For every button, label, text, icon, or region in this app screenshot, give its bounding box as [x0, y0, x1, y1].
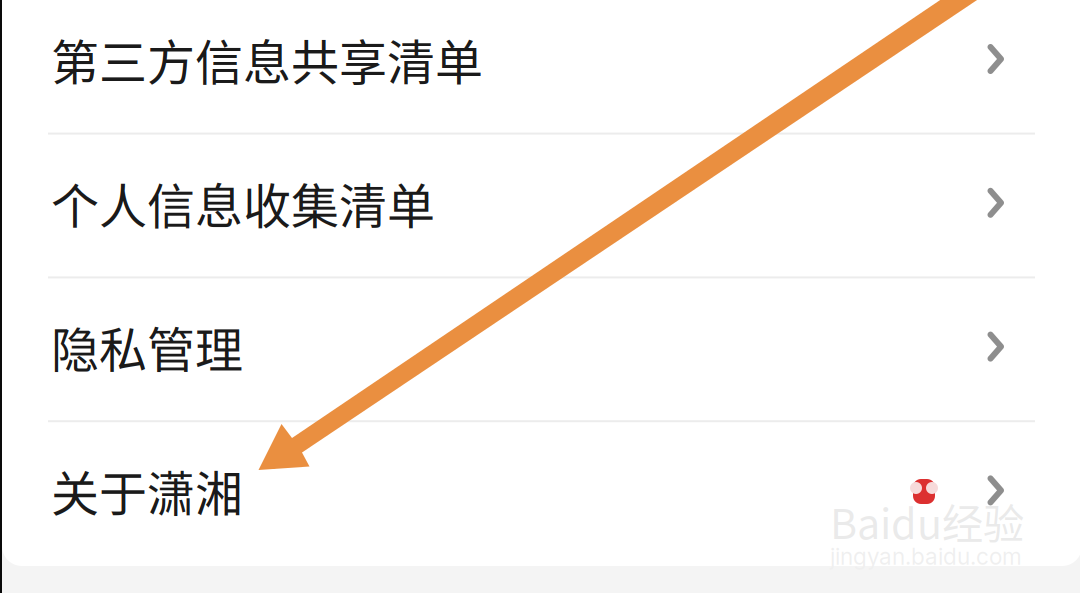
button[interactable]: 隐私管理 [0, 275, 1080, 418]
staticText: jingyan.baidu.com [830, 543, 1022, 570]
staticText: Baidu经验 [830, 491, 1024, 551]
staticText: 个人信息收集清单 [51, 168, 435, 237]
staticText: 隐私管理 [51, 312, 243, 381]
staticText: 关于潇湘 [51, 456, 243, 525]
button[interactable]: 关于潇湘 [0, 418, 1080, 562]
button[interactable]: 第三方信息共享清单 [0, 0, 1080, 131]
button[interactable]: 个人信息收集清单 [0, 131, 1080, 275]
staticText: 第三方信息共享清单 [51, 24, 483, 94]
